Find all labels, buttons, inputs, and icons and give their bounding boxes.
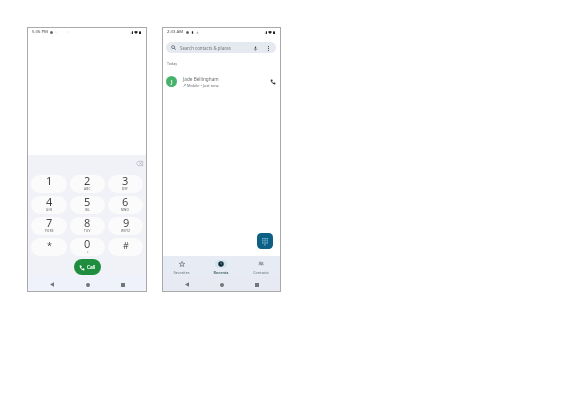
staticText: WXYZ	[121, 229, 131, 232]
button[interactable]: Home	[216, 279, 227, 290]
staticText: GHI	[46, 208, 53, 211]
button[interactable]: Call Jade Bellingham	[267, 76, 278, 87]
staticText: 9	[123, 217, 130, 230]
staticText: ABC	[84, 187, 91, 190]
staticText: 2:33 AM	[167, 29, 184, 35]
button[interactable]: #	[108, 238, 143, 256]
staticText: 1	[46, 175, 53, 188]
button[interactable]: 9	[108, 217, 143, 235]
button[interactable]: Backspace	[133, 157, 145, 169]
button[interactable]: Search contacts & places	[166, 42, 276, 53]
staticText: 5:36 PM	[32, 29, 48, 35]
button[interactable]: Recents	[201, 256, 241, 276]
button[interactable]: Open dialpad	[257, 233, 273, 249]
button[interactable]: Call	[74, 259, 101, 275]
button[interactable]: Voice search	[252, 45, 258, 51]
staticText: 6	[122, 196, 129, 209]
staticText: 2	[84, 175, 91, 188]
button[interactable]: Back	[181, 279, 192, 290]
staticText: 8	[84, 217, 91, 230]
button[interactable]: Favorites	[162, 256, 201, 276]
button[interactable]: 7	[31, 217, 67, 235]
staticText: JKL	[85, 208, 91, 211]
staticText: Favorites	[173, 270, 190, 275]
staticText: *	[47, 239, 52, 251]
button[interactable]: 5	[70, 196, 105, 214]
staticText: TUV	[84, 229, 91, 232]
button[interactable]: More options	[265, 45, 271, 51]
staticText: 7	[46, 217, 53, 230]
staticText: 0	[84, 238, 91, 251]
button[interactable]: Recent apps	[251, 279, 262, 290]
staticText: 4	[46, 196, 53, 209]
button[interactable]: Home	[82, 279, 93, 290]
staticText: Mobile • Just now	[187, 83, 219, 88]
button[interactable]: Recent apps	[117, 279, 128, 290]
button[interactable]: 4	[31, 196, 67, 214]
staticText: Today	[167, 61, 177, 66]
staticText: Recents	[213, 270, 229, 275]
staticText: +	[87, 250, 89, 253]
staticText: #	[123, 239, 129, 251]
button[interactable]: Contacts	[241, 256, 281, 276]
button[interactable]: 1	[31, 175, 67, 193]
button[interactable]: 2	[70, 175, 105, 193]
button[interactable]: 0	[70, 238, 105, 256]
button[interactable]: 3	[108, 175, 143, 193]
staticText: J	[171, 78, 173, 86]
button[interactable]: 6	[108, 196, 143, 214]
button[interactable]: *	[31, 238, 67, 256]
staticText: MNO	[121, 208, 130, 211]
staticText: Contacts	[253, 270, 269, 275]
button[interactable]: Back	[46, 279, 57, 290]
staticText: Jade Bellingham	[183, 76, 219, 82]
staticText: 3	[122, 175, 129, 188]
staticText: DEF	[122, 187, 129, 190]
staticText: Call	[87, 264, 96, 271]
staticText: PQRS	[45, 229, 54, 232]
button[interactable]: 8	[70, 217, 105, 235]
staticText: Search contacts & places	[180, 45, 231, 51]
button[interactable]: J	[162, 71, 281, 92]
staticText: 5	[84, 196, 91, 209]
